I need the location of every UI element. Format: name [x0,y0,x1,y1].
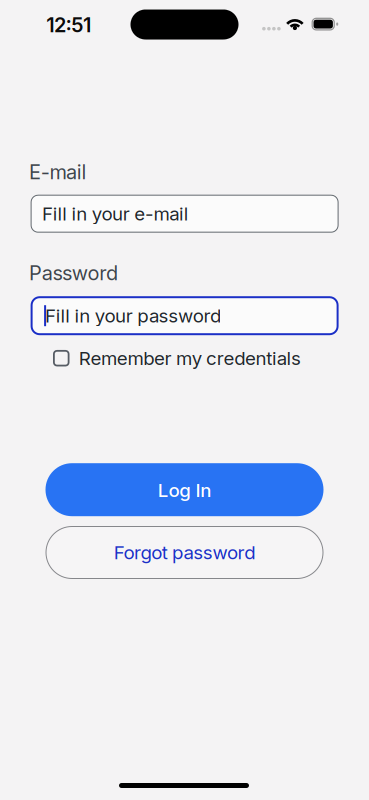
button[interactable]: Fill in your e-mail [31,195,339,233]
staticText: Remember my credentials [79,347,301,369]
staticText: Password [29,261,118,285]
staticText: E-mail [29,160,86,184]
button[interactable]: Log In [45,463,323,516]
staticText: 12:51 [46,13,91,37]
button[interactable]: Forgot password [45,526,323,579]
staticText: Forgot password [114,541,255,563]
button[interactable]: Fill in your password [31,296,339,335]
staticText: Fill in your e-mail [42,203,189,225]
staticText: Fill in your password [45,305,221,327]
button[interactable]: Remember my credentials [0,347,369,369]
staticText: Log In [158,479,211,501]
